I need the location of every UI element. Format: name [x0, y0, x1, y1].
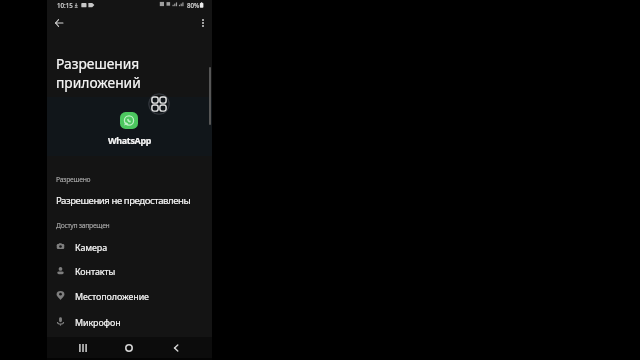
staticText: Доступ запрещен	[56, 221, 110, 230]
button[interactable]: Back	[48, 12, 69, 33]
staticText: Разрешения не предоставлены	[56, 194, 191, 207]
button[interactable]: More options	[192, 12, 213, 33]
button[interactable]: Home	[118, 337, 140, 359]
staticText: Контакты	[75, 265, 116, 277]
button[interactable]: WhatsApp	[120, 112, 138, 129]
staticText: Камера	[75, 241, 108, 253]
button[interactable]: Камера	[47, 236, 212, 257]
staticText: Местоположение	[75, 290, 149, 302]
button[interactable]: Местоположение	[47, 285, 212, 306]
staticText: Микрофон	[75, 316, 121, 328]
button[interactable]: Recents	[72, 337, 94, 359]
staticText: 10:15	[57, 1, 73, 9]
button[interactable]: All apps	[148, 93, 170, 115]
button[interactable]: Контакты	[47, 260, 212, 281]
button[interactable]: Микрофон	[47, 311, 212, 332]
staticText: 80%	[187, 1, 200, 9]
button[interactable]: Back	[165, 337, 187, 359]
staticText: Разрешения приложений	[56, 54, 141, 92]
staticText: Разрешено	[56, 175, 91, 184]
staticText: WhatsApp	[108, 134, 152, 146]
